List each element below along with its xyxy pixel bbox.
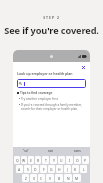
button[interactable]: T xyxy=(42,156,49,164)
button[interactable]: Close xyxy=(80,64,86,70)
button[interactable]: U xyxy=(58,156,65,164)
staticText: C xyxy=(40,176,43,181)
button[interactable]: D xyxy=(32,165,39,173)
staticText: See if you're covered. xyxy=(4,24,99,37)
button[interactable]: R xyxy=(35,156,41,164)
staticText: N xyxy=(67,176,70,181)
button[interactable]: "so" xyxy=(13,147,38,155)
staticText: F xyxy=(43,167,45,172)
button[interactable]: C xyxy=(38,174,45,182)
button[interactable]: J xyxy=(64,165,71,173)
staticText: E xyxy=(30,158,32,163)
staticText: Try another employer first xyxy=(21,97,58,101)
button[interactable]: M xyxy=(73,174,81,182)
button[interactable]: Y xyxy=(50,156,57,164)
staticText: Q xyxy=(16,158,19,163)
staticText: U xyxy=(60,158,63,163)
button[interactable]: K xyxy=(72,165,79,173)
staticText: D xyxy=(34,167,37,172)
button[interactable]: G xyxy=(48,165,55,173)
staticText: M xyxy=(75,176,79,181)
button[interactable]: Q xyxy=(14,156,20,164)
button[interactable]: sons xyxy=(64,147,90,155)
staticText: P xyxy=(84,158,87,163)
staticText: "so" xyxy=(23,149,29,153)
button[interactable] xyxy=(17,79,86,88)
button[interactable]: Z xyxy=(22,174,29,182)
button[interactable]: I xyxy=(66,156,73,164)
staticText: Tips to find coverage xyxy=(20,91,53,95)
staticText: I xyxy=(69,158,71,163)
button[interactable]: O xyxy=(74,156,81,164)
button[interactable]: H xyxy=(56,165,63,173)
button[interactable]: son xyxy=(38,147,64,155)
button[interactable]: P xyxy=(82,156,89,164)
staticText: W xyxy=(22,158,26,163)
staticText: STEP 2 xyxy=(43,15,60,20)
button[interactable]: A xyxy=(16,165,23,173)
staticText: H xyxy=(58,167,61,172)
button[interactable]: X xyxy=(30,174,37,182)
staticText: Z xyxy=(25,176,27,181)
staticText: Look up employer or health plan xyxy=(17,71,73,76)
staticText: B xyxy=(58,176,61,181)
staticText: Y xyxy=(53,158,55,163)
staticText: O xyxy=(76,158,79,163)
staticText: L xyxy=(83,167,85,172)
button[interactable]: F xyxy=(40,165,47,173)
staticText: S xyxy=(27,167,29,172)
staticText: X xyxy=(33,176,35,181)
staticText: son xyxy=(48,149,54,153)
button[interactable]: S xyxy=(24,165,31,173)
staticText: K xyxy=(74,167,77,172)
button[interactable]: L xyxy=(80,165,87,173)
staticText: R xyxy=(37,158,40,163)
staticText: G xyxy=(50,167,53,172)
staticText: A xyxy=(18,167,21,172)
button[interactable]: V xyxy=(46,174,54,182)
staticText: V xyxy=(49,176,52,181)
button[interactable]: N xyxy=(64,174,72,182)
staticText: sons xyxy=(74,149,81,153)
staticText: If you're covered through a family membe… xyxy=(21,103,86,111)
staticText: J xyxy=(67,167,68,172)
button[interactable]: B xyxy=(55,174,63,182)
button[interactable]: W xyxy=(21,156,27,164)
staticText: T xyxy=(45,158,47,163)
button[interactable]: E xyxy=(28,156,34,164)
